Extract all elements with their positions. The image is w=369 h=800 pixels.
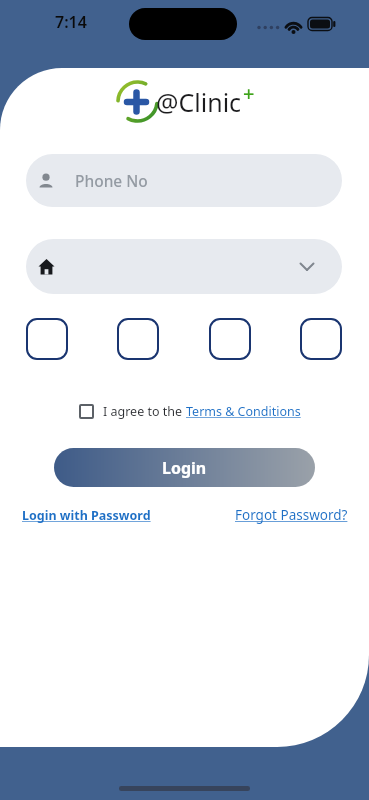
button[interactable] — [79, 404, 94, 419]
staticText: I agree to the — [103, 403, 186, 420]
button[interactable] — [26, 318, 68, 360]
button[interactable]: Login — [54, 448, 315, 487]
button[interactable] — [300, 318, 342, 360]
button[interactable]: Terms & Conditions — [186, 403, 301, 420]
staticText: Phone No — [75, 170, 148, 191]
staticText: Login — [162, 457, 207, 479]
staticText: @Clinic — [156, 85, 242, 119]
button[interactable]: Login with Password — [22, 507, 151, 524]
staticText: + — [243, 80, 255, 107]
button[interactable] — [117, 318, 159, 360]
button[interactable] — [26, 239, 342, 294]
button[interactable]: Forgot Password? — [235, 506, 348, 524]
button[interactable]: Phone No — [26, 154, 342, 207]
button[interactable] — [209, 318, 251, 360]
staticText: 7:14 — [55, 11, 87, 33]
